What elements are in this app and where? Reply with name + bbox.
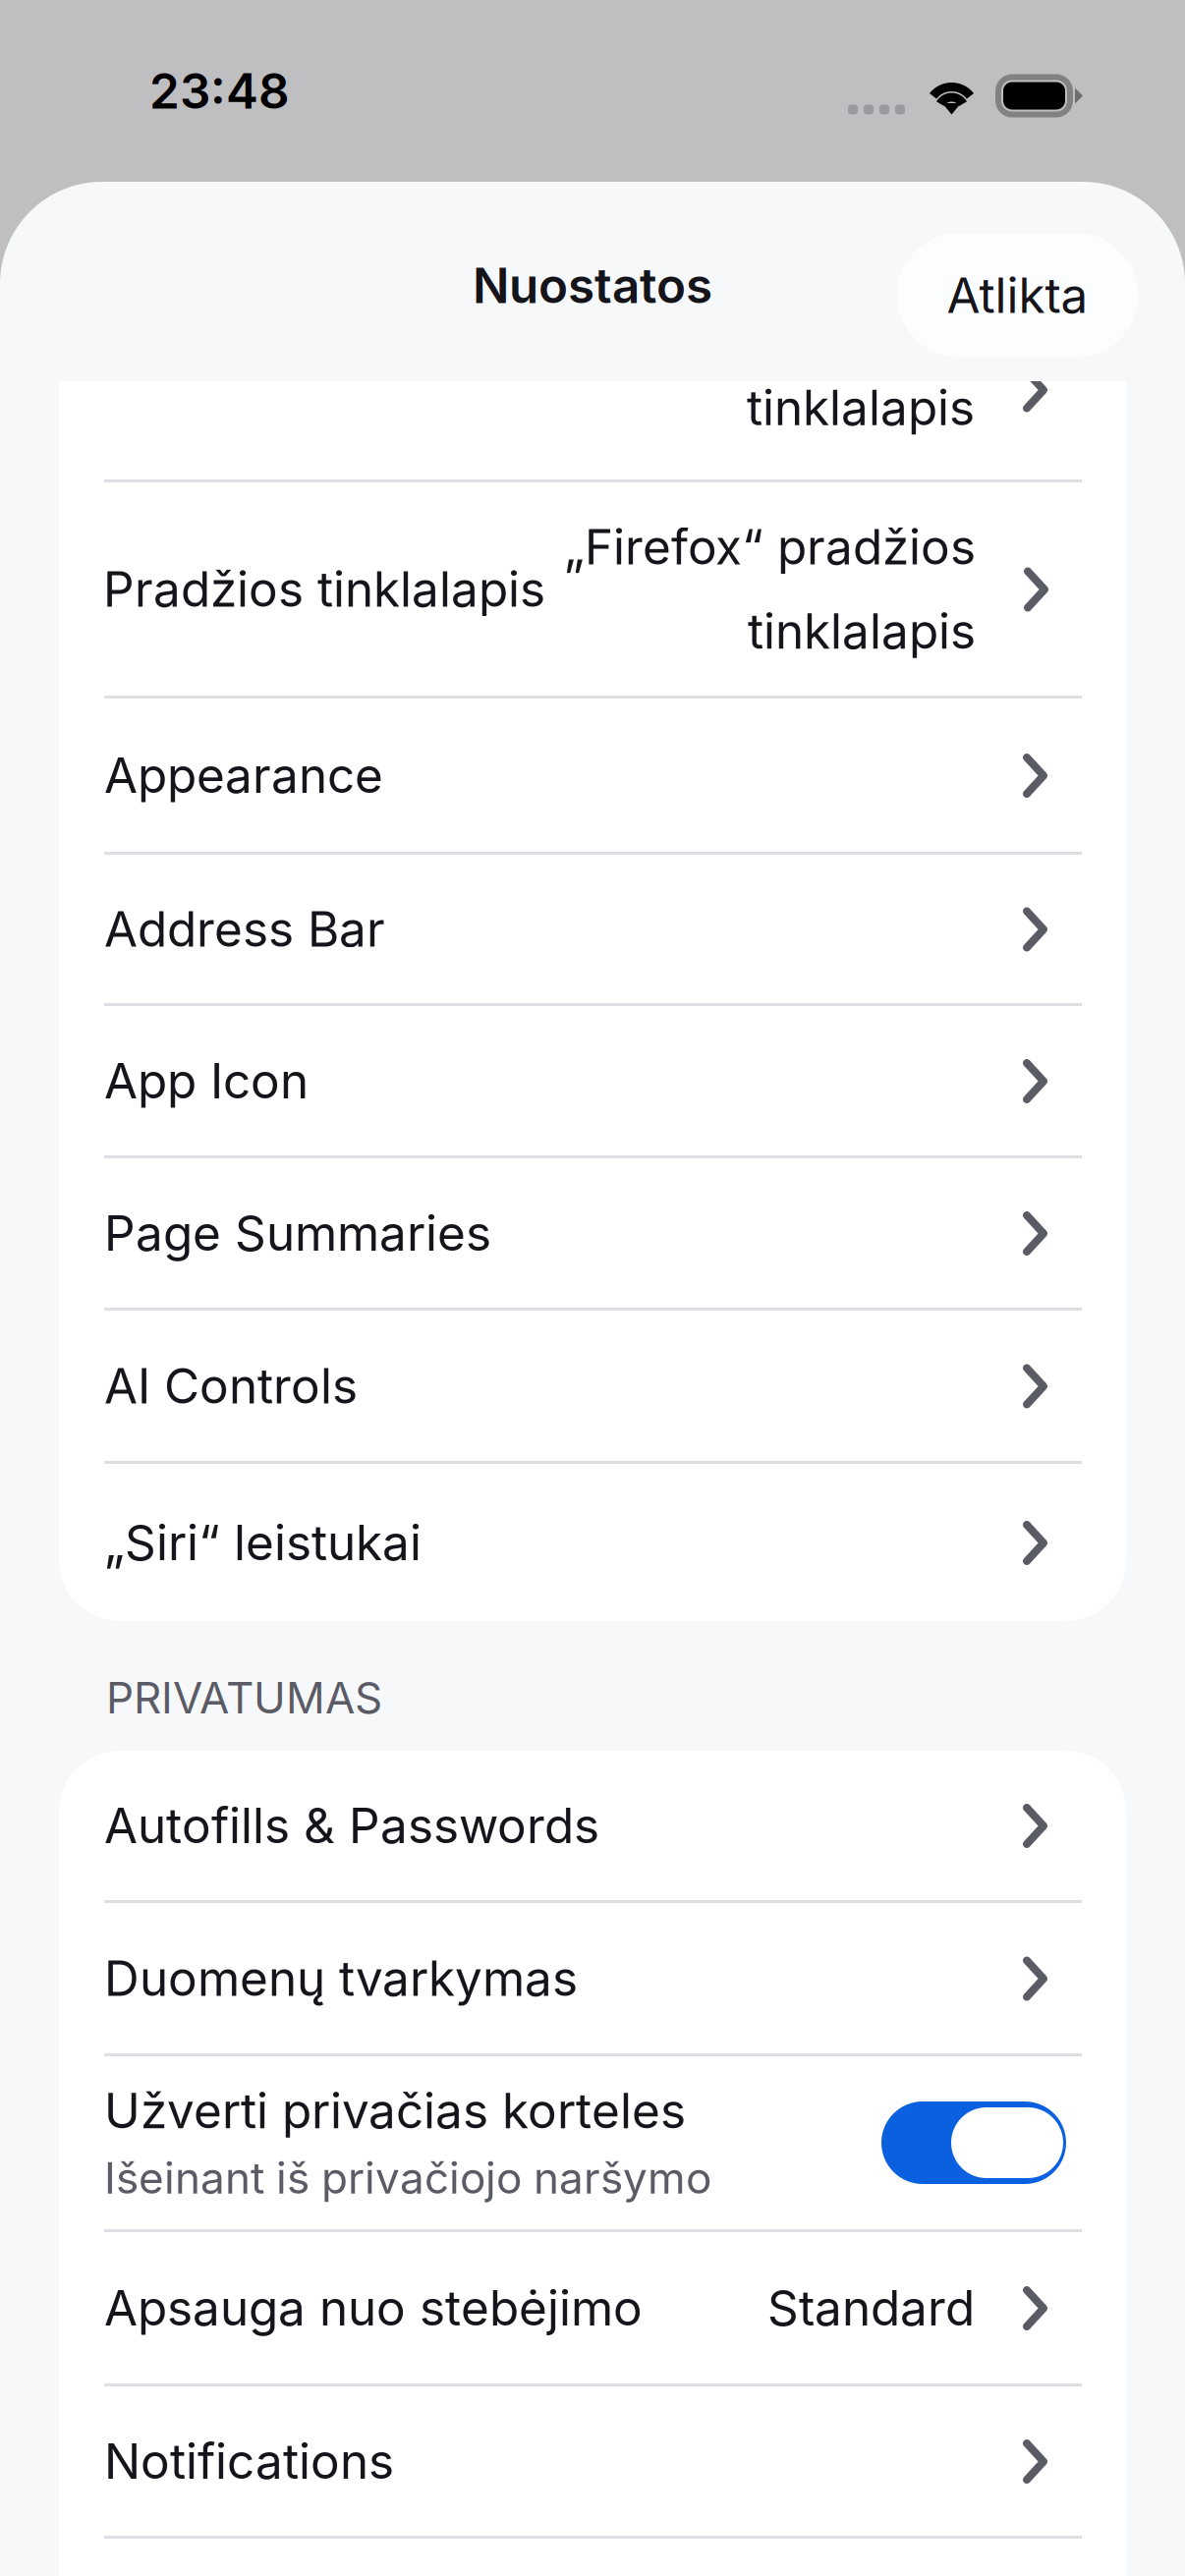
button[interactable]: Page Summaries (59, 1158, 1126, 1308)
button[interactable]: Notifications (59, 2386, 1126, 2536)
button[interactable]: AI Controls (59, 1311, 1126, 1461)
staticText: Pradžios tinklalapis (103, 560, 545, 618)
staticText: 23:48 (149, 62, 290, 120)
button[interactable]: Apsauga nuo stebėjimo (59, 2232, 1126, 2383)
staticText: „Firefox“ pradžios (564, 518, 976, 576)
button[interactable]: Address Bar (59, 855, 1126, 1003)
staticText: Apsauga nuo stebėjimo (104, 2279, 643, 2337)
button[interactable]: Atlikta (897, 233, 1138, 358)
button[interactable]: Autofills & Passwords (59, 1751, 1126, 1900)
staticText: tinklalapis (747, 378, 975, 437)
staticText: „Siri“ leistukai (104, 1513, 422, 1572)
button[interactable]: App Icon (59, 1006, 1126, 1155)
button[interactable]: Pradžios tinklalapis (59, 482, 1126, 696)
button[interactable]: Duomenų tvarkymas (59, 1903, 1126, 2053)
staticText: PRIVATUMAS (106, 1672, 382, 1724)
button[interactable]: Užverti privačias korteles (59, 2056, 1126, 2229)
button[interactable]: „Siri“ leistukai (59, 1464, 1126, 1621)
staticText: Autofills & Passwords (104, 1796, 599, 1855)
staticText: Appearance (104, 746, 383, 805)
staticText: Nuostatos (473, 256, 712, 315)
button[interactable]: Appearance (59, 699, 1126, 852)
staticText: AI Controls (104, 1356, 358, 1415)
staticText: App Icon (104, 1051, 309, 1110)
staticText: Užverti privačias korteles (104, 2081, 686, 2140)
staticText: Atlikta (947, 266, 1088, 325)
staticText: Page Summaries (104, 1204, 491, 1262)
staticText: Išeinant iš privačiojo naršymo (104, 2152, 711, 2204)
staticText: Standard (767, 2279, 975, 2337)
staticText: Address Bar (104, 900, 385, 958)
staticText: tinklalapis (748, 602, 976, 660)
staticText: Duomenų tvarkymas (104, 1949, 578, 2008)
staticText: Notifications (104, 2432, 394, 2490)
